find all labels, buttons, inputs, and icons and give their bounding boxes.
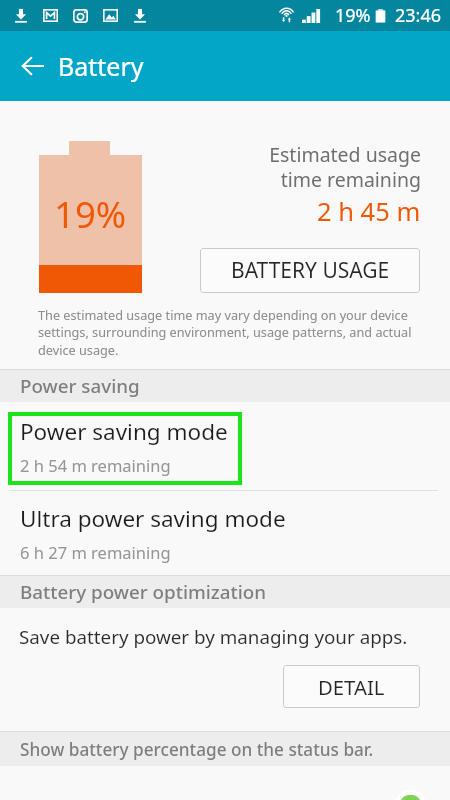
- staticText: Power saving mode: [20, 416, 228, 447]
- button[interactable]: Navigate up: [13, 46, 53, 86]
- staticText: 19%: [54, 189, 127, 239]
- staticText: BATTERY USAGE: [231, 256, 390, 285]
- staticText: Save battery power by managing your apps…: [19, 624, 408, 650]
- button[interactable]: DETAIL: [283, 665, 420, 708]
- button[interactable]: Ultra power saving mode: [0, 490, 450, 575]
- button[interactable]: BATTERY USAGE: [200, 248, 420, 293]
- staticText: The estimated usage time may vary depend…: [38, 306, 414, 359]
- staticText: 23:46: [395, 3, 442, 28]
- staticText: Power saving: [20, 373, 140, 399]
- staticText: 2 h 45 m: [317, 194, 421, 229]
- staticText: Show battery percentage on the status ba…: [20, 738, 374, 761]
- staticText: 19%: [335, 3, 371, 28]
- button[interactable]: Show battery percentage toggle: [0, 766, 450, 800]
- staticText: Ultra power saving mode: [20, 503, 286, 534]
- staticText: Battery power optimization: [20, 579, 267, 605]
- staticText: DETAIL: [318, 673, 385, 701]
- staticText: 2 h 54 m remaining: [20, 454, 171, 476]
- staticText: Battery: [58, 49, 144, 83]
- staticText: 6 h 27 m remaining: [20, 541, 171, 563]
- button[interactable]: Power saving mode: [0, 402, 450, 489]
- staticText: Estimated usage time remaining: [269, 141, 421, 193]
